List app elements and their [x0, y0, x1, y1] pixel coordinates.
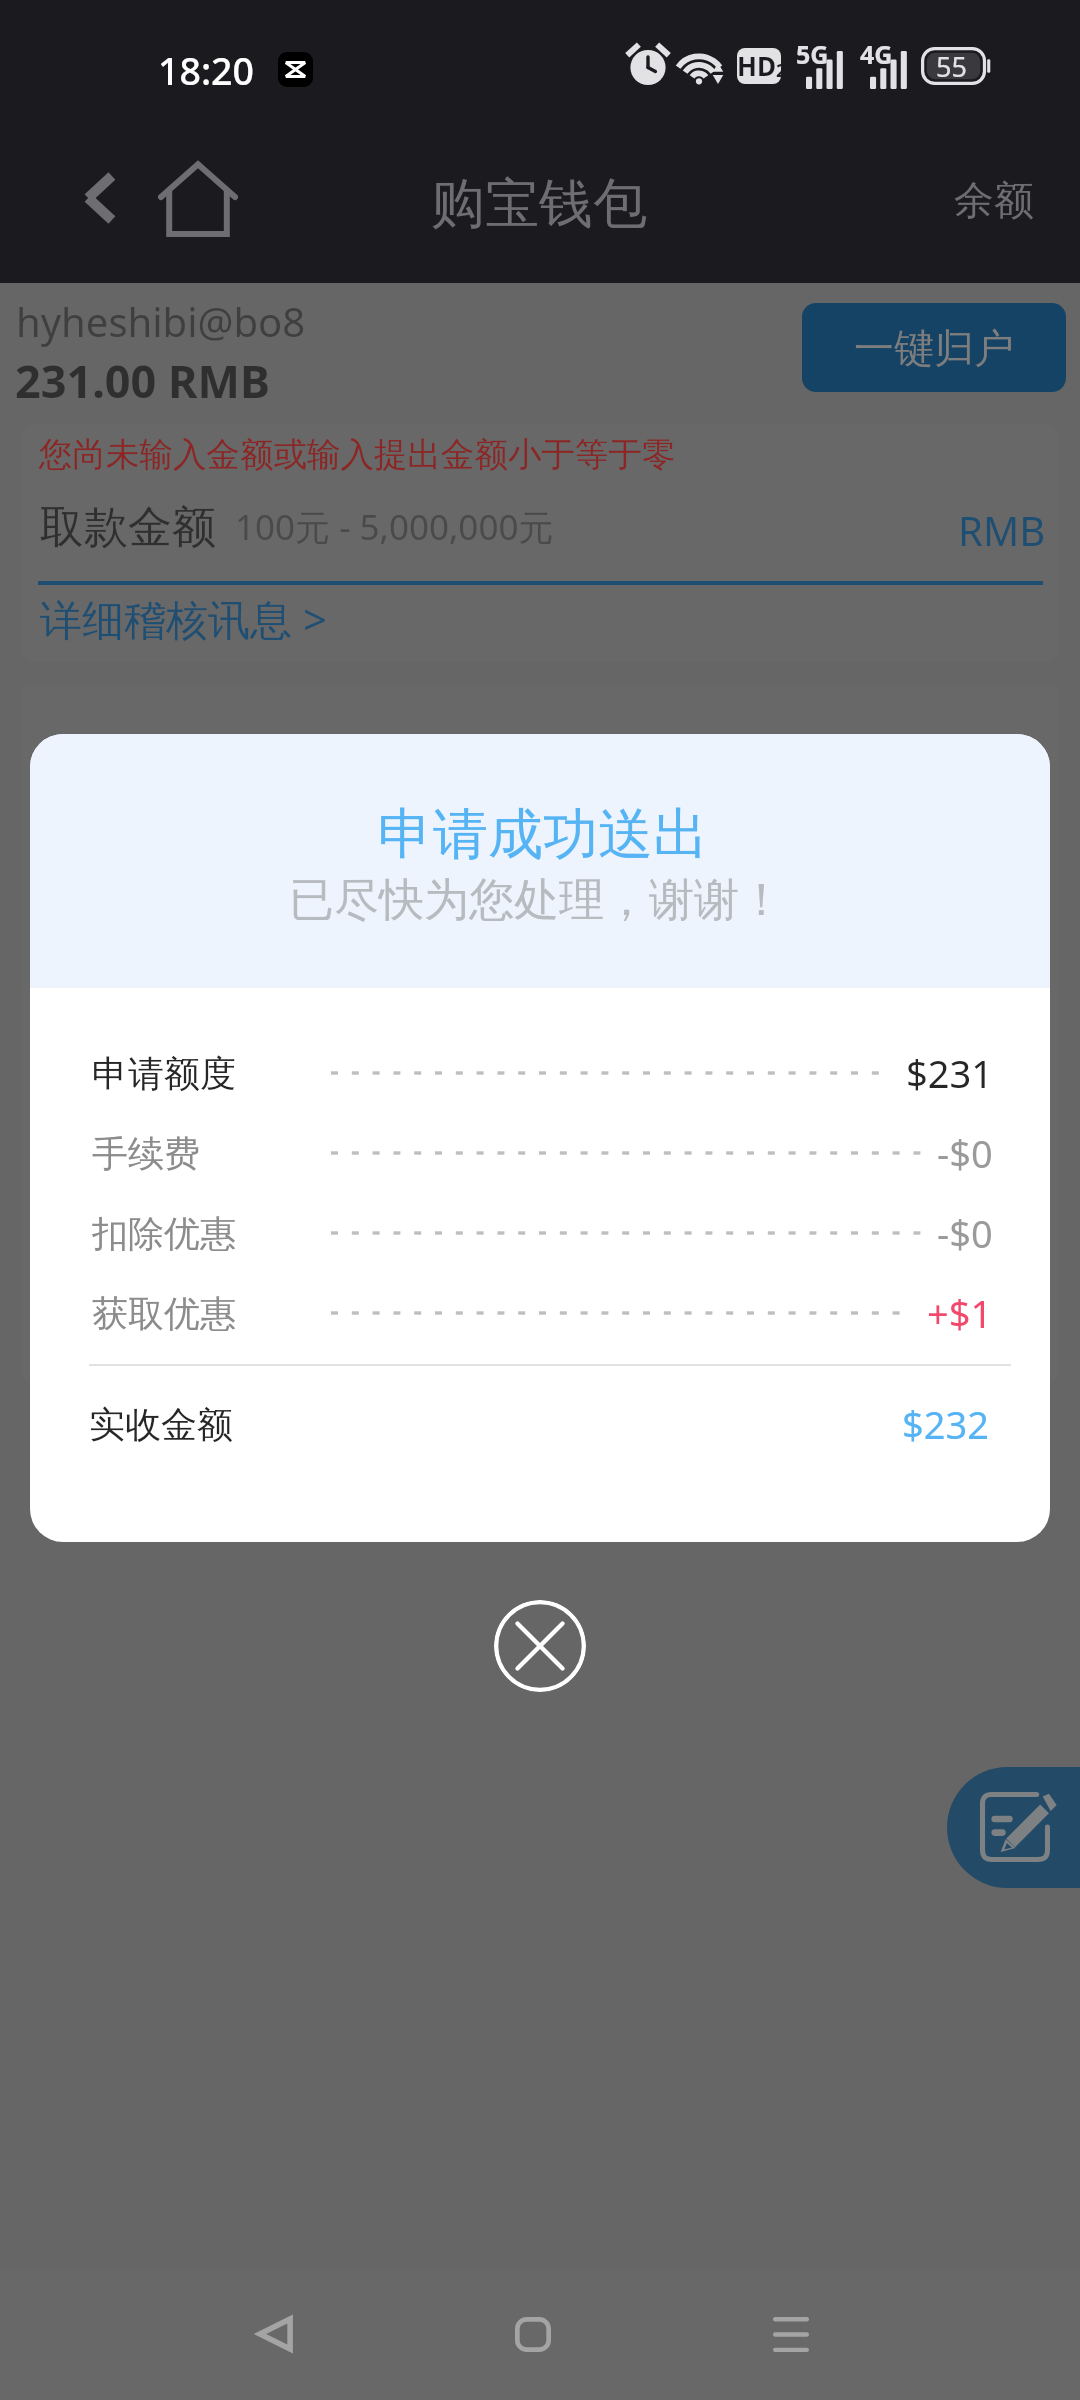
- button[interactable]: 一键归户: [802, 303, 1066, 392]
- staticText: 2: [776, 58, 781, 83]
- staticText: 取款金额: [40, 500, 216, 555]
- staticText: HD: [737, 48, 776, 83]
- staticText: 详细稽核讯息 >: [40, 590, 327, 647]
- staticText: -$0: [937, 1207, 993, 1259]
- staticText: hyheshibi@bo8: [16, 294, 306, 348]
- staticText: 已尽快为您处理，谢谢！: [289, 872, 784, 929]
- staticText: 购宝钱包: [431, 170, 647, 238]
- button[interactable]: 详细稽核讯息 >: [32, 584, 335, 653]
- button[interactable]: Recents: [726, 2268, 856, 2400]
- button[interactable]: Compose: [947, 1767, 1080, 1888]
- staticText: $231: [906, 1047, 993, 1099]
- staticText: 余额: [954, 175, 1034, 225]
- staticText: 5G: [796, 37, 829, 71]
- staticText: 申请额度: [92, 1051, 236, 1096]
- staticText: 手续费: [92, 1131, 200, 1176]
- staticText: 获取优惠: [92, 1291, 236, 1336]
- staticText: +$1: [927, 1287, 993, 1339]
- button[interactable]: Home: [468, 2268, 598, 2400]
- staticText: 100元 - 5,000,000元: [235, 503, 554, 551]
- staticText: 实收金额: [89, 1402, 233, 1447]
- button[interactable]: Close: [494, 1600, 586, 1692]
- button[interactable]: Back: [62, 155, 138, 241]
- staticText: -$0: [937, 1127, 993, 1179]
- staticText: RMB: [958, 503, 1046, 557]
- staticText: 申请成功送出: [378, 800, 708, 869]
- button[interactable]: Back: [210, 2268, 340, 2400]
- staticText: 您尚未输入金额或输入提出金额小于等于零: [39, 434, 676, 476]
- button[interactable]: 余额: [930, 160, 1058, 240]
- staticText: 231.00 RMB: [15, 350, 270, 411]
- staticText: 18:20: [158, 45, 254, 96]
- staticText: 55: [936, 48, 967, 85]
- staticText: $232: [902, 1398, 989, 1450]
- staticText: 扣除优惠: [92, 1211, 236, 1256]
- button[interactable]: Home: [152, 152, 244, 244]
- staticText: 一键归户: [854, 323, 1014, 373]
- staticText: 4G: [860, 37, 893, 71]
